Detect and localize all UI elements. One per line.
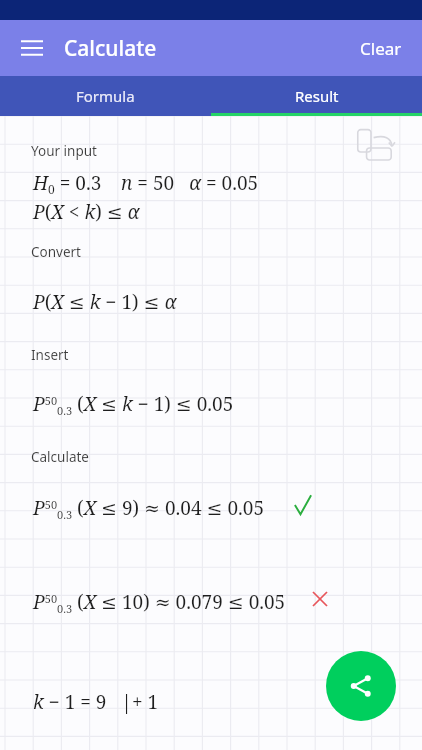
staticText: Your input: [31, 142, 97, 160]
staticText: P500.3 (X ≤ 9) ≈ 0.04 ≤ 0.05: [33, 495, 265, 523]
staticText: Insert: [31, 346, 69, 364]
staticText: H0 = 0.3 n = 50 α = 0.05: [33, 170, 259, 198]
button[interactable]: Clear: [350, 29, 412, 68]
staticText: Clear: [360, 37, 402, 60]
button[interactable]: Result: [211, 76, 422, 116]
staticText: k − 1 = 9 |+ 1: [33, 689, 159, 715]
staticText: P(X ≤ k − 1) ≤ α: [33, 289, 177, 315]
staticText: P(X < k) ≤ α: [33, 199, 140, 225]
staticText: Calculate: [64, 34, 157, 63]
staticText: P500.3 (X ≤ k − 1) ≤ 0.05: [33, 391, 234, 419]
button[interactable]: Rotate screen: [356, 128, 400, 168]
staticText: Convert: [31, 243, 81, 261]
staticText: P500.3 (X ≤ 10) ≈ 0.079 ≤ 0.05: [33, 589, 286, 617]
staticText: Result: [295, 86, 339, 106]
button[interactable]: Share: [326, 651, 396, 721]
button[interactable]: Formula: [0, 76, 211, 116]
button[interactable]: Open navigation menu: [12, 28, 52, 68]
staticText: Formula: [76, 86, 135, 106]
staticText: Calculate: [31, 448, 89, 466]
